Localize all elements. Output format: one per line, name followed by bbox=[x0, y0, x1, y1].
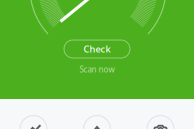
staticText: Check bbox=[83, 43, 110, 55]
staticText: Scan now bbox=[79, 64, 114, 75]
button[interactable]: Statistics bbox=[15, 110, 52, 129]
button[interactable]: Check bbox=[64, 40, 130, 58]
button[interactable]: Camera bbox=[142, 110, 179, 129]
button[interactable]: Home bbox=[78, 110, 115, 129]
